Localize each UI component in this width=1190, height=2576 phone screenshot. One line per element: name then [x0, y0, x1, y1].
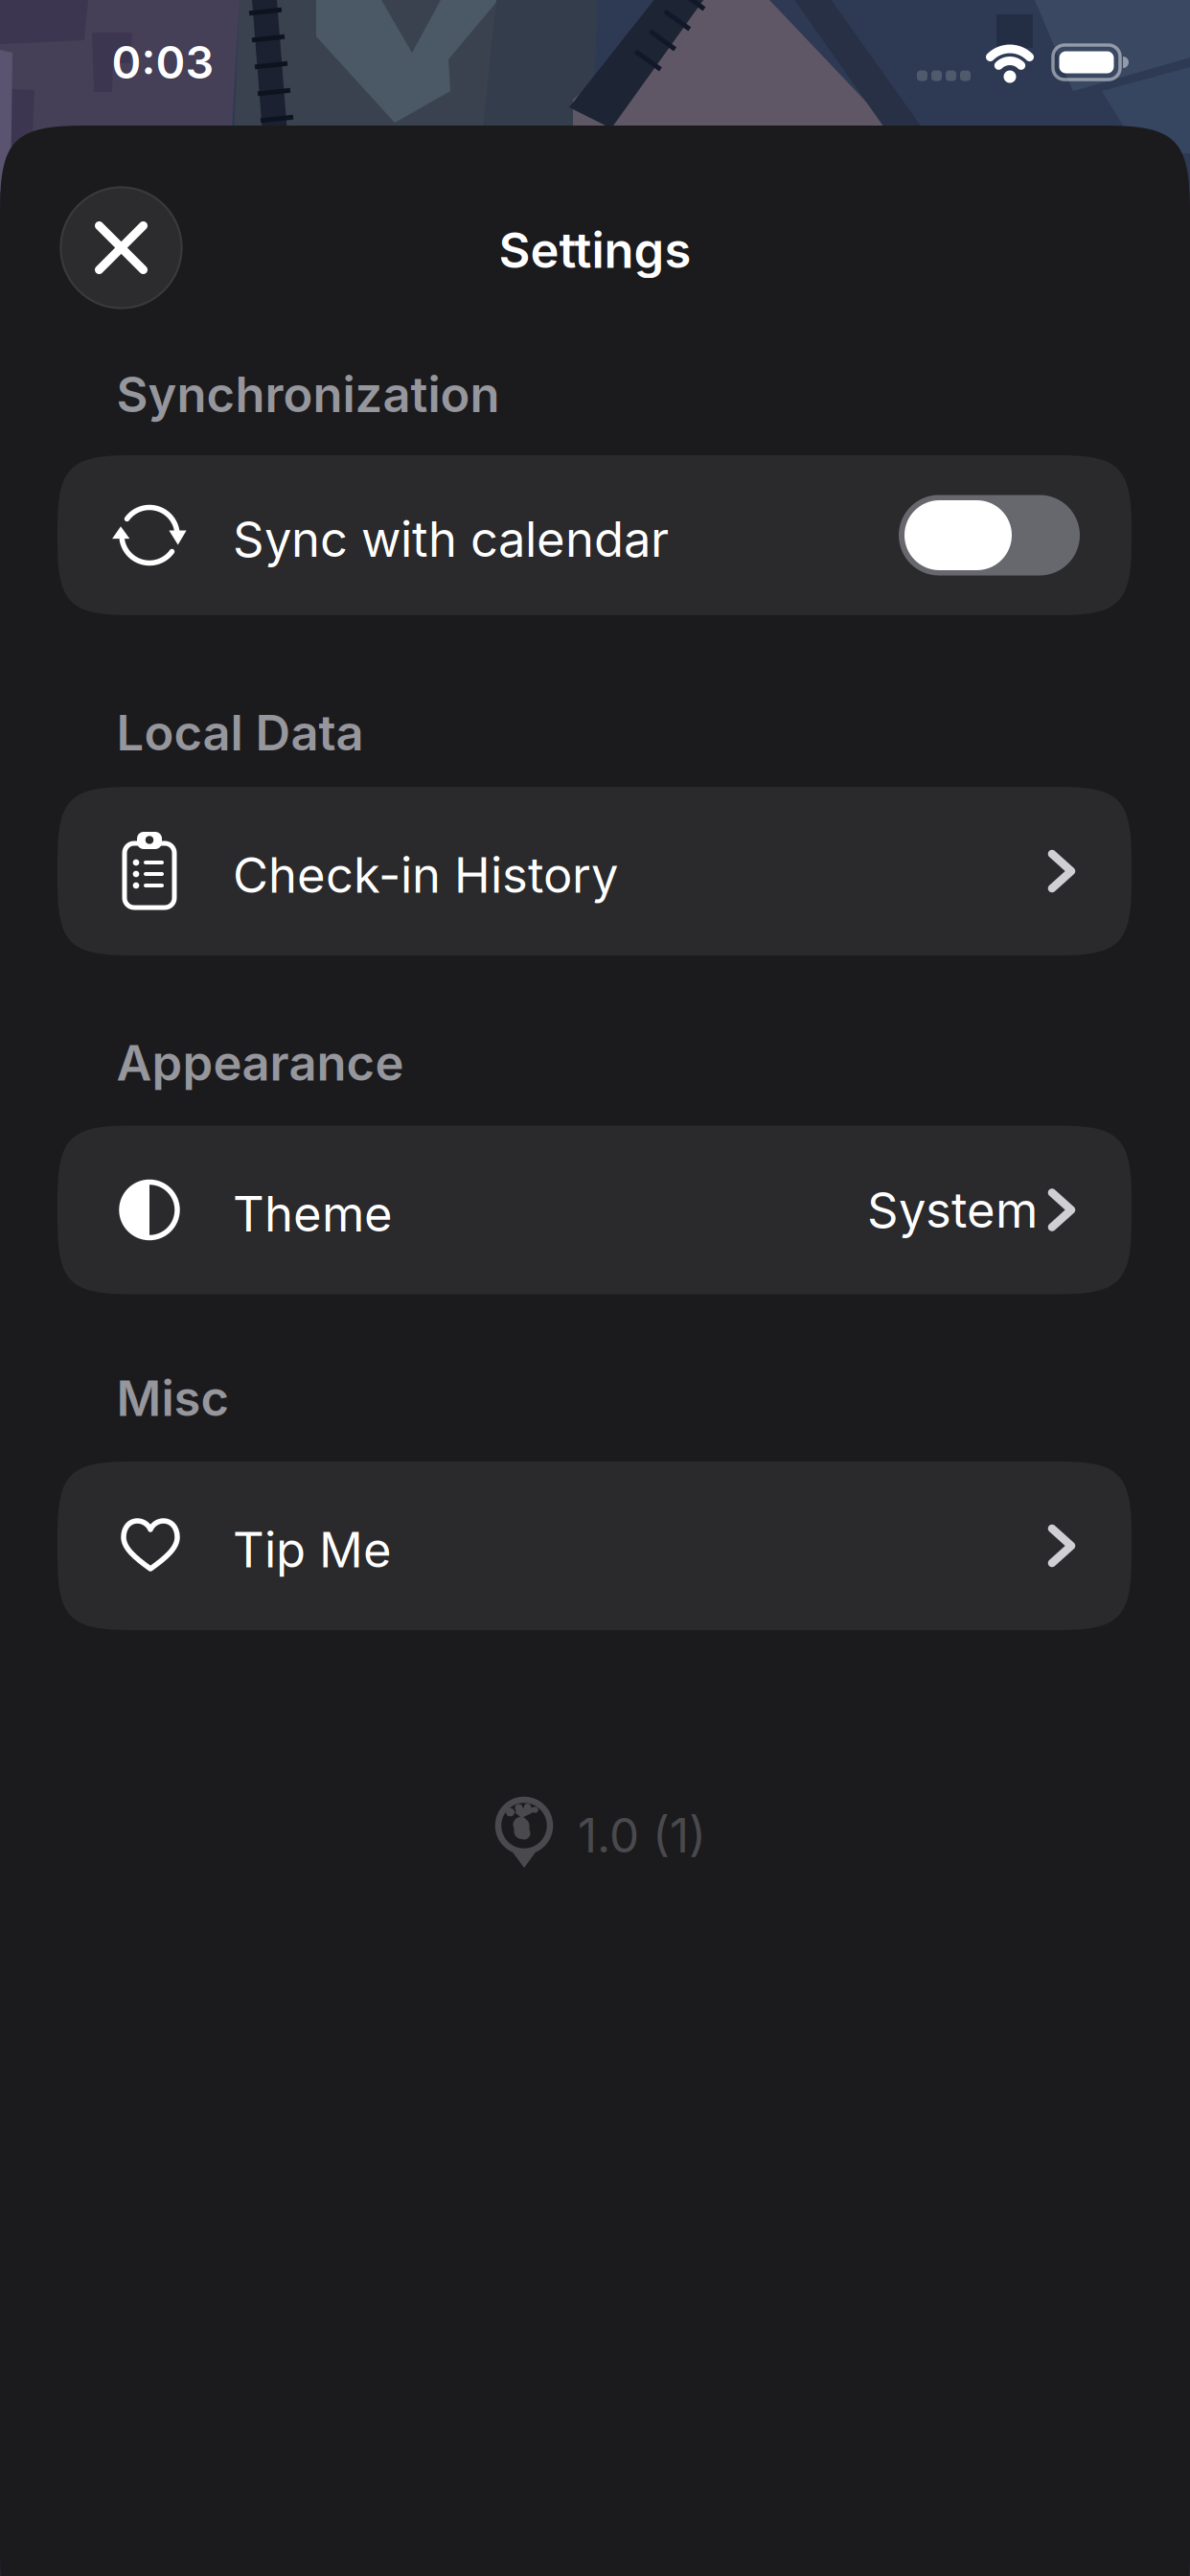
staticText: Appearance [116, 1034, 404, 1091]
button[interactable]: Sync with calendar [899, 495, 1080, 575]
button[interactable]: Tip Me [57, 1461, 1132, 1630]
staticText: Local Data [116, 704, 364, 761]
staticText: Settings [499, 221, 691, 279]
staticText: 0:03 [112, 36, 214, 89]
button[interactable]: Close [59, 185, 183, 310]
staticText: Synchronization [116, 366, 500, 423]
staticText: Check-in History [233, 846, 618, 904]
staticText: Misc [116, 1370, 229, 1427]
staticText: Theme [233, 1185, 393, 1242]
staticText: Sync with calendar [233, 510, 669, 568]
staticText: Tip Me [233, 1521, 392, 1578]
staticText: 1.0 (1) [578, 1807, 706, 1863]
button[interactable]: Check-in History [57, 787, 1132, 955]
button[interactable]: Theme [57, 1126, 1132, 1294]
staticText: System [867, 1181, 1038, 1239]
